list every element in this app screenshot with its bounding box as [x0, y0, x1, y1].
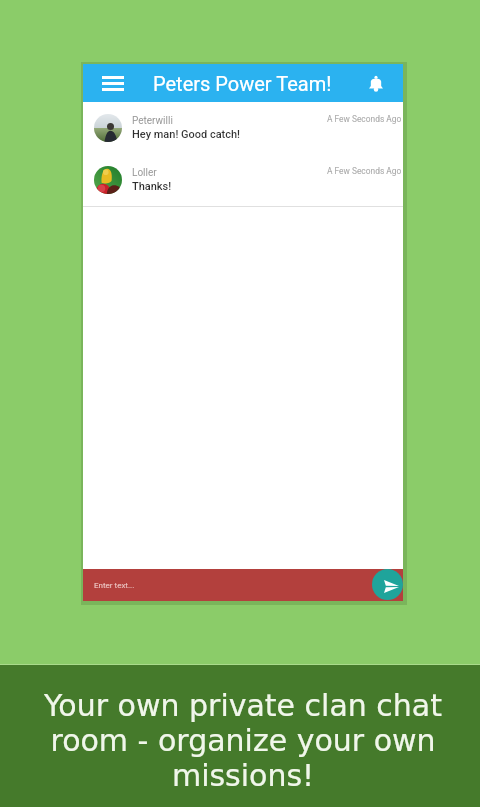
staticText: Enter text...	[94, 581, 135, 590]
button[interactable]: Menu	[93, 64, 133, 102]
button[interactable]: Enter text...	[83, 569, 403, 601]
staticText: A Few Seconds Ago	[327, 166, 402, 176]
staticText: Hey man! Good catch!	[132, 128, 241, 141]
staticText: Your own private clan chat room - organi…	[38, 688, 448, 793]
staticText: A Few Seconds Ago	[327, 114, 402, 124]
staticText: Peters Power Team!	[153, 72, 332, 95]
button[interactable]: Send	[372, 569, 403, 600]
button[interactable]: Notifications	[357, 64, 395, 102]
staticText: Loller	[132, 167, 157, 179]
button[interactable]: Peterwilli	[83, 102, 403, 154]
button[interactable]: Loller	[83, 154, 403, 206]
staticText: Peterwilli	[132, 115, 173, 127]
staticText: Thanks!	[132, 180, 172, 193]
